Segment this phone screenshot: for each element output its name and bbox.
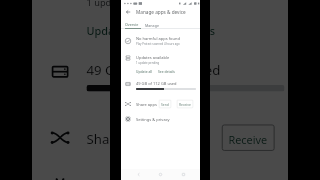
button[interactable]: Receive [222,124,275,151]
button[interactable]: Send [162,124,202,151]
staticText: 49 GB of 112 GB used [136,81,177,86]
button[interactable]: Settings & privacy [37,171,288,180]
button[interactable]: Navigate up [124,8,132,16]
staticText: Updates available [136,55,170,60]
button[interactable]: Update all [136,69,153,73]
staticText: 1 update pending [136,61,160,65]
button[interactable]: Send [159,100,171,108]
button[interactable]: No harmful apps found [121,34,200,47]
staticText: See details [158,69,175,73]
staticText: 1 update pending [86,0,166,9]
staticText: Receive [179,102,191,106]
button[interactable]: Receive [177,100,193,108]
staticText: 49 GB of 112 GB used [86,62,222,78]
staticText: Update all [86,22,143,35]
button[interactable]: Back [133,169,144,180]
staticText: Receive [228,131,268,144]
button[interactable]: Settings & privacy [121,114,200,124]
staticText: Update all [136,69,153,73]
staticText: No harmful apps found [136,36,180,41]
button[interactable]: Recent apps [178,169,189,180]
button[interactable]: Update all [86,22,143,35]
staticText: Play Protect scanned 4 hours ago [136,42,180,46]
staticText: Share apps [136,102,157,107]
button[interactable]: See details [159,22,215,35]
staticText: Settings & privacy [136,117,170,122]
button[interactable]: Home [155,169,166,180]
button[interactable]: Overview [125,22,141,29]
button[interactable]: See details [158,69,175,73]
staticText: Share apps [86,131,156,148]
staticText: Manage apps & device [136,9,186,15]
staticText: Send [161,102,169,106]
button[interactable]: Manage [144,22,159,29]
staticText: Manage [145,23,159,28]
staticText: See details [159,22,215,35]
staticText: Overview [125,22,141,29]
